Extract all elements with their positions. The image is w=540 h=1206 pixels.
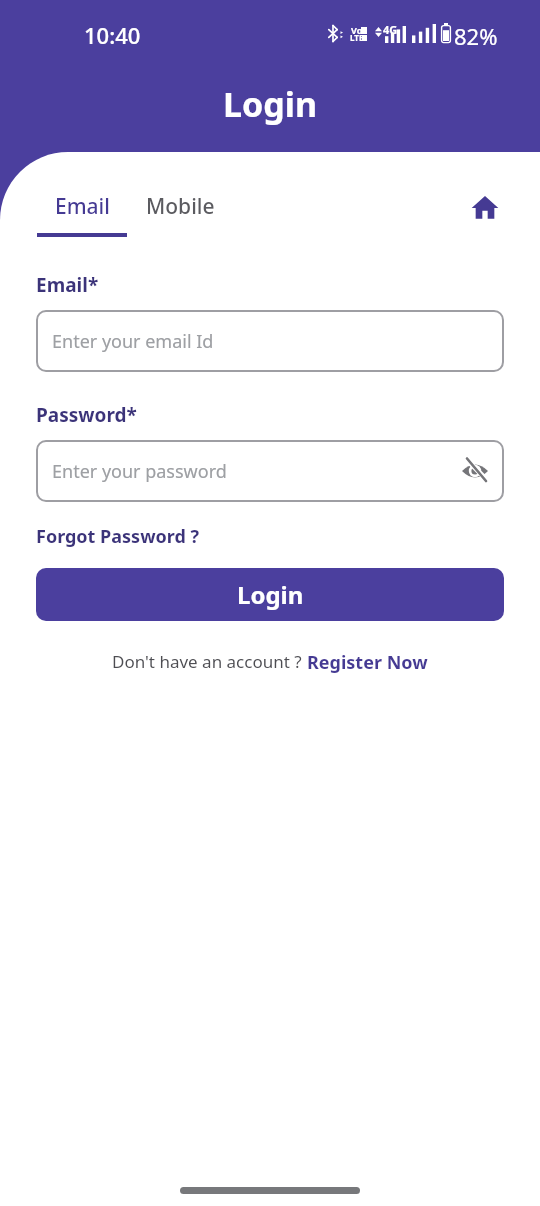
- staticText: Forgot Password ?: [36, 524, 200, 549]
- staticText: Mobile: [146, 192, 215, 221]
- staticText: Enter your password: [52, 459, 227, 484]
- button[interactable]: Login: [36, 568, 504, 621]
- staticText: Don't have an account ?: [112, 650, 307, 673]
- button[interactable]: Register Now: [307, 650, 428, 675]
- staticText: Email*: [36, 272, 99, 298]
- staticText: 4G: [383, 22, 398, 37]
- button[interactable]: Mobile: [135, 192, 225, 221]
- staticText: LTE: [350, 32, 364, 43]
- staticText: Email: [55, 192, 110, 221]
- button[interactable]: [469, 192, 501, 224]
- button[interactable]: [460, 456, 490, 486]
- staticText: Enter your email Id: [52, 329, 214, 354]
- staticText: Password*: [36, 402, 137, 428]
- staticText: Register Now: [307, 650, 428, 675]
- staticText: Login: [223, 81, 318, 127]
- staticText: Vo: [351, 24, 363, 36]
- button[interactable]: Forgot Password ?: [36, 524, 200, 549]
- staticText: 10:40: [84, 20, 141, 50]
- staticText: Login: [237, 578, 304, 611]
- button[interactable]: Enter your password: [36, 440, 504, 502]
- button[interactable]: Enter your email Id: [36, 310, 504, 372]
- button[interactable]: Email: [37, 192, 127, 221]
- staticText: 82%: [454, 21, 498, 51]
